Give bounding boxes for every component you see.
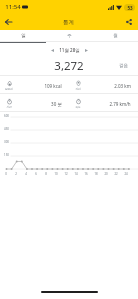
button[interactable]: 거리	[69, 76, 138, 93]
staticText: 0	[5, 172, 7, 176]
button[interactable]: Back	[0, 14, 16, 30]
staticText: 거리	[75, 87, 81, 90]
staticText: 일	[21, 33, 26, 39]
staticText: 10	[54, 172, 58, 176]
button[interactable]: Previous day	[47, 45, 58, 56]
staticText: 2.79 km/h	[109, 101, 131, 107]
staticText: 53	[127, 5, 133, 11]
staticText: 속도	[75, 105, 81, 108]
button[interactable]: 월	[92, 30, 138, 41]
staticText: 11월 28일	[59, 47, 80, 53]
button[interactable]: 일	[0, 30, 46, 41]
staticText: 칼로리	[5, 87, 13, 90]
button[interactable]: 칼로리	[0, 76, 69, 93]
button[interactable]: Share	[120, 14, 138, 30]
staticText: 6	[35, 172, 37, 176]
staticText: 주	[67, 33, 72, 39]
staticText: 30 분	[51, 101, 62, 107]
staticText: 14	[74, 172, 78, 176]
staticText: 2.03 km	[114, 83, 131, 89]
staticText: 2	[15, 172, 17, 176]
staticText: 109 kcal	[44, 83, 62, 89]
staticText: 월	[113, 33, 118, 39]
staticText: 600	[4, 114, 9, 118]
button[interactable]: 속도	[69, 94, 138, 111]
staticText: 20	[104, 172, 108, 176]
staticText: 150	[4, 153, 9, 157]
staticText: 걸음	[119, 63, 128, 69]
staticText: 300	[4, 140, 9, 144]
button[interactable]: 시간	[0, 94, 69, 111]
staticText: 시간	[6, 105, 12, 108]
button[interactable]: 주	[46, 30, 92, 41]
staticText: 통계	[63, 19, 74, 26]
staticText: 4	[25, 172, 27, 176]
staticText: 11:54	[5, 3, 21, 11]
staticText: 3,272	[54, 58, 84, 74]
staticText: 450	[4, 127, 9, 131]
staticText: 16	[84, 172, 88, 176]
staticText: 18	[94, 172, 98, 176]
staticText: 8	[45, 172, 47, 176]
button[interactable]: Next day	[81, 45, 92, 56]
staticText: 12	[64, 172, 68, 176]
staticText: 22	[114, 172, 118, 176]
staticText: 24	[124, 172, 128, 176]
